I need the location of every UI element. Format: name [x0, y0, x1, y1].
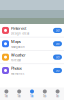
staticText: GET [55, 69, 59, 72]
button[interactable]: Tab [26, 89, 38, 98]
button[interactable]: Maps [0, 37, 64, 50]
staticText: GET [55, 55, 59, 59]
staticText: Tab [4, 94, 8, 98]
staticText: Photos [11, 66, 22, 71]
staticText: Forecast [11, 58, 21, 62]
button[interactable]: Photos [0, 64, 64, 77]
staticText: Tab [56, 94, 60, 98]
button[interactable]: Tab [13, 89, 26, 98]
staticText: Tab [30, 94, 34, 98]
button[interactable]: Tab [0, 89, 13, 98]
staticText: GET [55, 29, 59, 32]
staticText: Tab [17, 94, 21, 98]
button[interactable]: Weather [0, 51, 64, 64]
button[interactable]: Tab [38, 89, 51, 98]
staticText: Design ideas [11, 32, 29, 35]
staticText: Memories [11, 72, 24, 75]
button[interactable]: Tab [51, 89, 64, 98]
staticText: Pinterest [11, 25, 26, 31]
staticText: GET [55, 42, 59, 45]
staticText: Weather [11, 52, 26, 57]
button[interactable]: Pinterest [0, 24, 64, 37]
staticText: Maps [11, 39, 21, 44]
staticText: Tab [43, 94, 47, 98]
staticText: Navigation [11, 45, 25, 49]
